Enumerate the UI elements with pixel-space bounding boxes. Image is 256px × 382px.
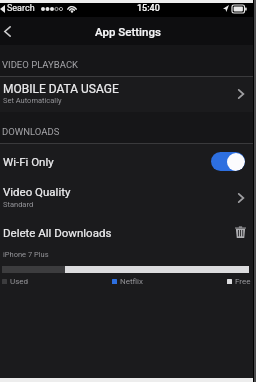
button[interactable]: Wi-Fi Only [0, 144, 256, 179]
button[interactable]: MOBILE DATA USAGE [0, 77, 256, 112]
staticText: Free [235, 277, 251, 286]
staticText: Standard [3, 200, 34, 209]
other: Delete all downloads [235, 226, 246, 238]
button[interactable]: Video Quality [0, 179, 256, 220]
button[interactable]: Back [0, 17, 15, 45]
staticText: Video Quality [3, 185, 71, 198]
staticText: Wi-Fi Only [3, 155, 54, 168]
staticText: MOBILE DATA USAGE [3, 82, 119, 96]
staticText: iPhone 7 Plus [3, 250, 49, 259]
staticText: Delete All Downloads [3, 226, 112, 239]
staticText: 15:40 [137, 3, 160, 14]
staticText: App Settings [95, 25, 161, 38]
staticText: Search [7, 3, 35, 14]
staticText: Used [10, 277, 29, 286]
staticText: Set Automatically [3, 96, 62, 105]
staticText: VIDEO PLAYBACK [2, 59, 79, 70]
staticText: Netflix [120, 277, 144, 286]
button[interactable]: Delete All Downloads [0, 220, 256, 244]
staticText: DOWNLOADS [2, 126, 60, 137]
